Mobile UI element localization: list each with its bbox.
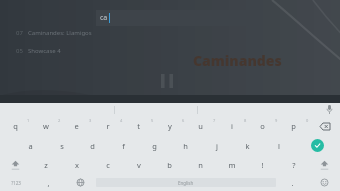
staticText: z [44,160,48,170]
staticText: x [75,160,79,170]
staticText: t [137,121,140,131]
button[interactable]: z [30,155,61,174]
staticText: Caminandes [193,51,282,70]
button[interactable]: b [154,155,185,174]
staticText: u [198,121,203,131]
staticText: 2 [58,118,61,123]
staticText: Showcase 4 [28,47,61,55]
button[interactable]: e [61,116,92,136]
staticText: o [260,121,265,131]
button[interactable]: Enter [294,136,340,155]
staticText: w [43,121,49,131]
staticText: ! [261,160,264,170]
button[interactable]: Shift [0,155,30,174]
staticText: y [168,121,172,131]
staticText: , [47,178,50,188]
staticText: 9 [275,118,278,123]
button[interactable]: . [276,174,308,191]
staticText: h [183,141,188,151]
staticText: 1 [27,118,30,123]
button[interactable]: ! [247,155,278,174]
button[interactable]: d [77,136,108,155]
button[interactable]: 07 [6,28,102,38]
staticText: Caminandes: Llamigos [28,29,92,37]
button[interactable]: , [32,174,64,191]
button[interactable]: m [216,155,247,174]
button[interactable]: g [139,136,170,155]
button[interactable]: w [30,116,61,136]
button[interactable]: k [232,136,263,155]
button[interactable]: v [123,155,154,174]
staticText: s [60,141,64,151]
button[interactable]: s [46,136,77,155]
staticText: 3 [89,118,92,123]
button[interactable]: Voice input [318,103,340,116]
button[interactable]: ca [96,10,247,26]
button[interactable]: Backspace [309,116,340,136]
staticText: 8 [244,118,247,123]
button[interactable]: y [154,116,185,136]
button[interactable]: p [278,116,309,136]
button[interactable]: n [185,155,216,174]
button[interactable]: i [216,116,247,136]
staticText: e [74,121,79,131]
staticText: ca [100,13,108,23]
staticText: c [106,160,110,170]
button[interactable]: ?123 [0,174,32,191]
button[interactable]: u [185,116,216,136]
staticText: 07 [16,29,23,37]
button[interactable]: Emoji [64,174,96,191]
button[interactable]: f [108,136,139,155]
staticText: j [216,141,218,151]
staticText: 4 [120,118,123,123]
staticText: l [278,141,280,151]
staticText: 0 [306,118,309,123]
staticText: q [13,121,18,131]
staticText: a [28,141,33,151]
staticText: 05 [16,47,23,55]
button[interactable]: h [170,136,201,155]
button[interactable]: t [123,116,154,136]
staticText: 5 [151,118,154,123]
staticText: . [291,178,294,188]
staticText: n [198,160,203,170]
button[interactable]: Emoji [308,174,340,191]
button[interactable]: q [0,116,30,136]
button[interactable]: x [61,155,92,174]
button[interactable]: r [92,116,123,136]
button[interactable]: j [201,136,232,155]
staticText: g [152,141,157,151]
staticText: 6 [182,118,185,123]
staticText: r [106,121,110,131]
staticText: i [231,121,233,131]
button[interactable]: English [96,178,276,187]
staticText: ?123 [11,180,21,186]
button[interactable]: Shift [309,155,340,174]
staticText: v [137,160,141,170]
staticText: k [245,141,250,151]
staticText: 7 [213,118,216,123]
button[interactable]: ? [278,155,309,174]
staticText: b [167,160,172,170]
staticText: ? [292,160,296,170]
button[interactable]: c [92,155,123,174]
staticText: f [122,141,125,151]
staticText: d [90,141,95,151]
button[interactable]: o [247,116,278,136]
staticText: m [228,160,236,170]
button[interactable]: a [15,136,46,155]
staticText: p [291,121,296,131]
button[interactable]: 05 [6,46,71,56]
staticText: English [178,180,194,186]
button[interactable]: l [263,136,294,155]
